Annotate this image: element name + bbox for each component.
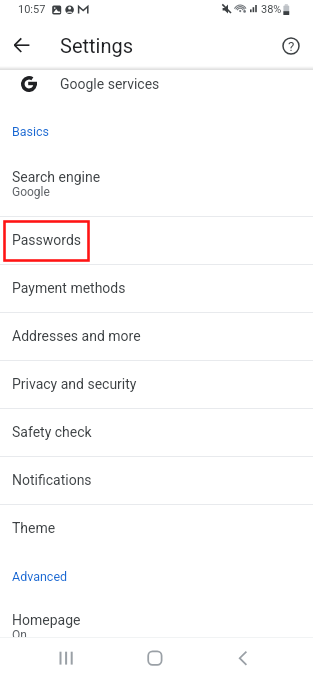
staticText: Google services (60, 76, 160, 92)
staticText: ? (288, 38, 295, 54)
button[interactable]: Theme (0, 504, 313, 552)
staticText: Advanced (12, 569, 68, 584)
staticText: Google (12, 185, 50, 199)
staticText: Safety check (12, 424, 92, 440)
button[interactable]: Privacy and security (0, 360, 313, 408)
button[interactable]: Recent apps (44, 640, 88, 675)
staticText: 10:57 (18, 3, 46, 16)
button[interactable]: Addresses and more (0, 312, 313, 360)
staticText: Search engine (12, 169, 101, 185)
staticText: 38% (261, 3, 282, 16)
staticText: Settings (60, 34, 134, 57)
button[interactable]: Help and feedback (269, 24, 313, 68)
button[interactable]: Navigate up (0, 23, 44, 67)
button[interactable]: Passwords (0, 216, 313, 264)
button[interactable]: Notifications (0, 456, 313, 504)
button[interactable]: Safety check (0, 408, 313, 456)
button[interactable]: Basics (0, 107, 313, 154)
staticText: Notifications (12, 472, 92, 488)
button[interactable]: Search engine (0, 152, 313, 216)
button[interactable]: Home (133, 640, 177, 675)
button[interactable]: Advanced (0, 552, 313, 599)
staticText: On (12, 628, 27, 642)
staticText: Homepage (12, 612, 81, 628)
staticText: Addresses and more (12, 328, 141, 344)
staticText: Privacy and security (12, 376, 137, 392)
staticText: Payment methods (12, 280, 126, 296)
button[interactable]: Homepage (0, 595, 313, 659)
button[interactable]: Payment methods (0, 264, 313, 312)
staticText: Theme (12, 520, 56, 536)
staticText: Passwords (12, 232, 82, 248)
button[interactable]: Back (221, 640, 265, 675)
staticText: Basics (12, 124, 50, 139)
button[interactable]: Google services (0, 71, 313, 96)
